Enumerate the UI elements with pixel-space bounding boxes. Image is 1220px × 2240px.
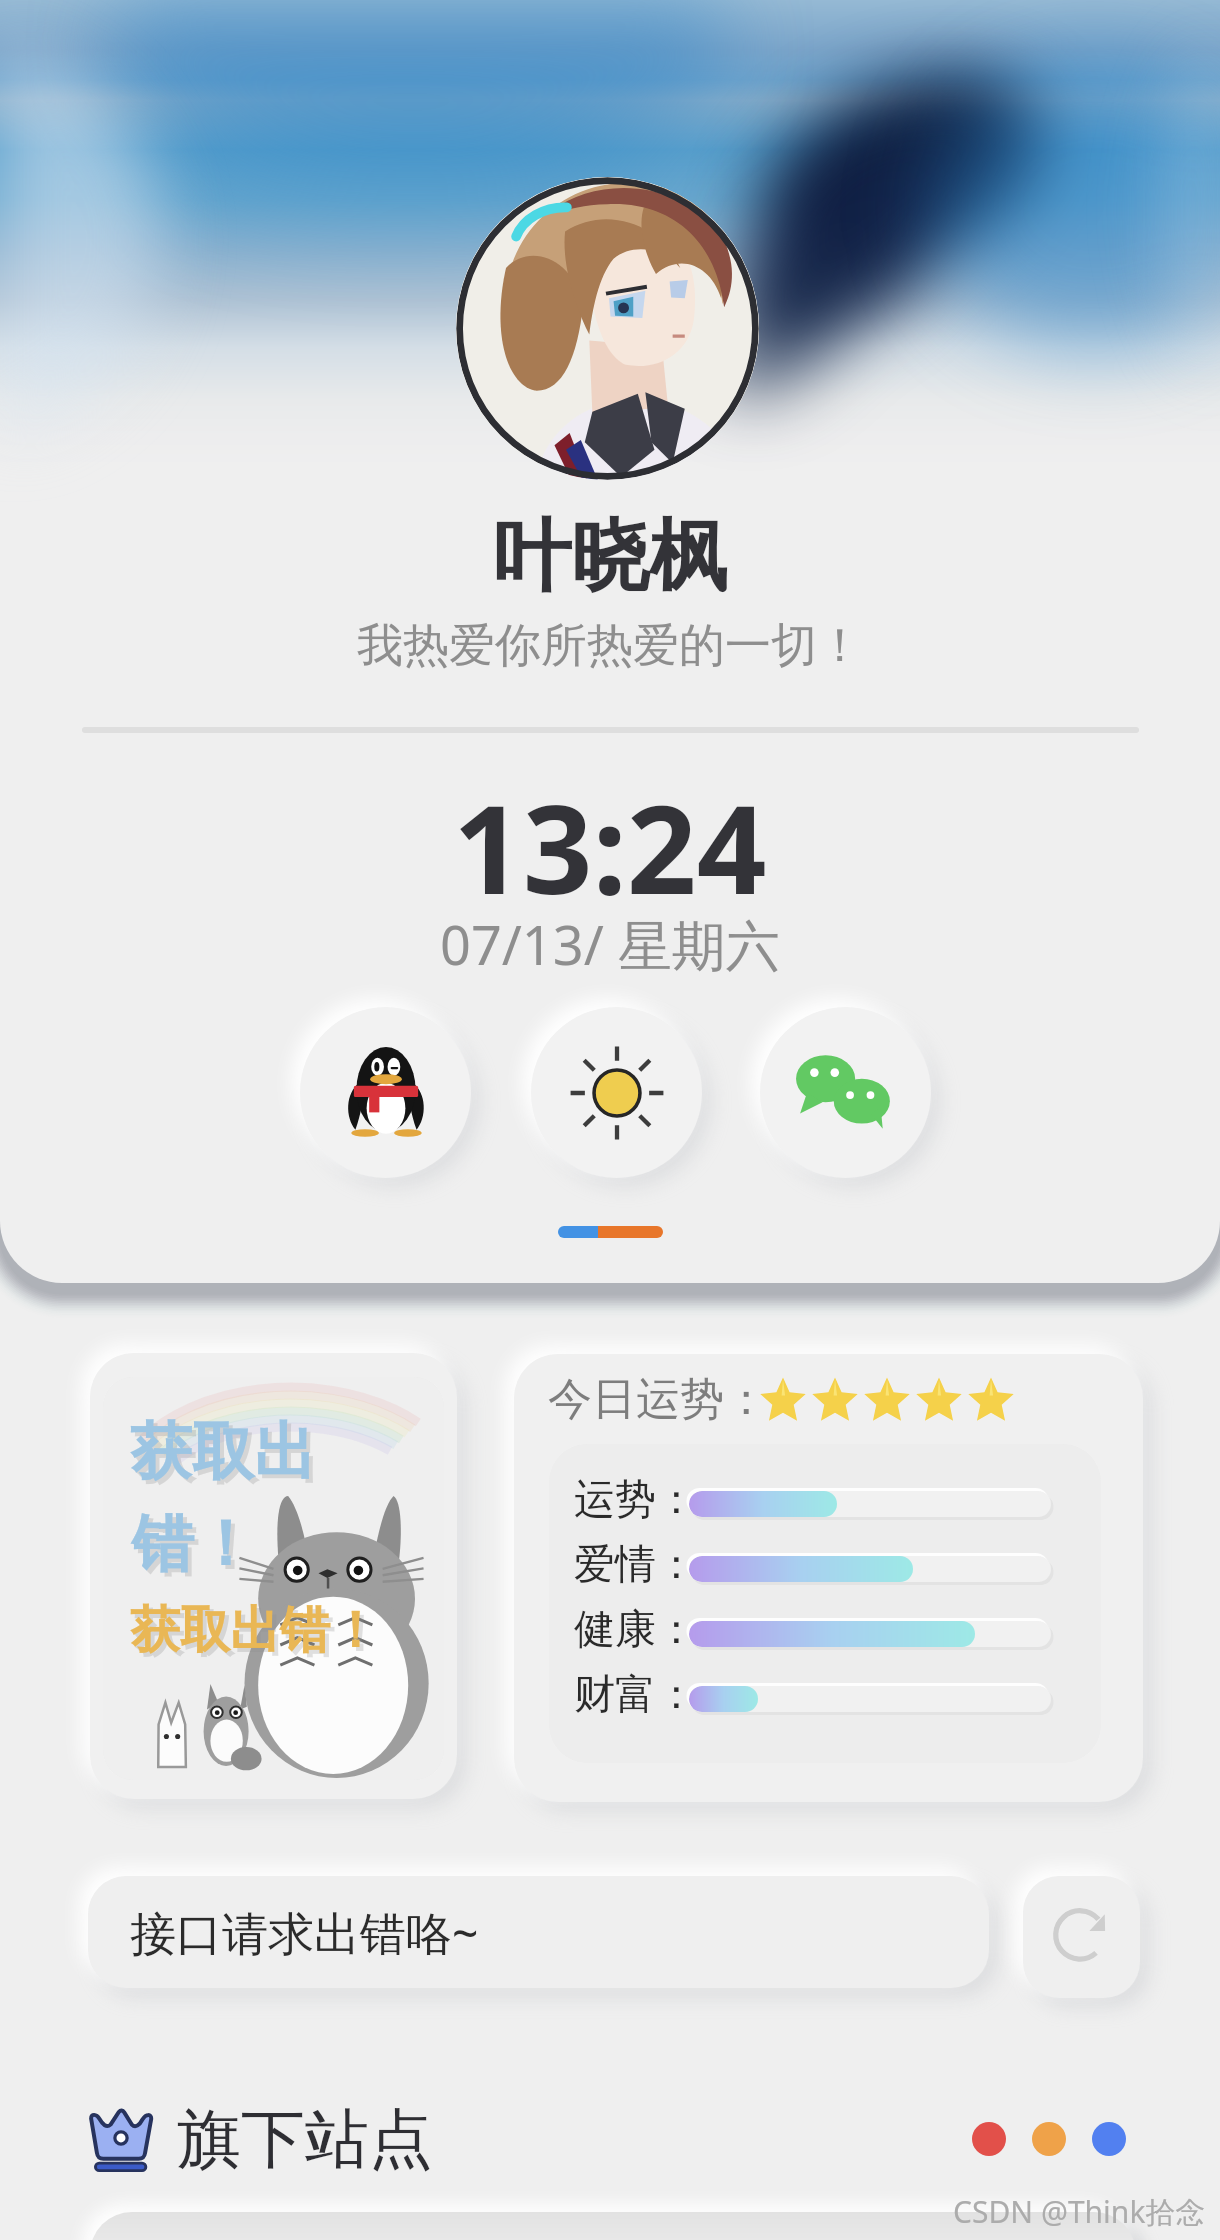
button[interactable]: 今日运势： [514, 1354, 1143, 1802]
button[interactable]: Refresh [1023, 1876, 1140, 1998]
staticText: 接口请求出错咯~ [130, 1901, 479, 1964]
button[interactable]: WeChat [760, 1007, 931, 1178]
staticText: 我热爱你所热爱的一切！ [357, 617, 863, 675]
staticText: 07/13/ 星期六 [440, 907, 780, 981]
staticText: 爱情： [574, 1539, 697, 1591]
staticText: 今日运势： [548, 1372, 768, 1427]
button[interactable]: 接口请求出错咯~ [88, 1876, 989, 1988]
staticText: CSDN @Think拾念 [953, 2191, 1206, 2232]
staticText: 旗下站点 [177, 2099, 433, 2180]
staticText: 获取出 [130, 1413, 316, 1491]
staticText: 叶晓枫 [493, 508, 727, 606]
button[interactable]: Site 2 [1032, 2122, 1066, 2156]
staticText: 错！ [136, 1509, 260, 1587]
staticText: 错！ [132, 1505, 256, 1583]
button[interactable]: Site 3 [1092, 2122, 1126, 2156]
staticText: 健康： [574, 1604, 697, 1656]
staticText: 13:24 [453, 764, 767, 930]
button[interactable] [90, 2212, 1136, 2240]
staticText: 获取出错！ [134, 1603, 384, 1666]
staticText: 财富： [574, 1669, 697, 1721]
button[interactable]: 获取出 [90, 1353, 457, 1799]
staticText: 获取出 [134, 1417, 320, 1495]
button[interactable]: 旗下站点 [85, 2098, 433, 2180]
staticText: 获取出错！ [130, 1599, 380, 1662]
button[interactable]: Weather [531, 1007, 702, 1178]
button[interactable]: Site 1 [972, 2122, 1006, 2156]
button[interactable]: QQ [300, 1007, 471, 1178]
staticText: 运势： [574, 1474, 697, 1526]
